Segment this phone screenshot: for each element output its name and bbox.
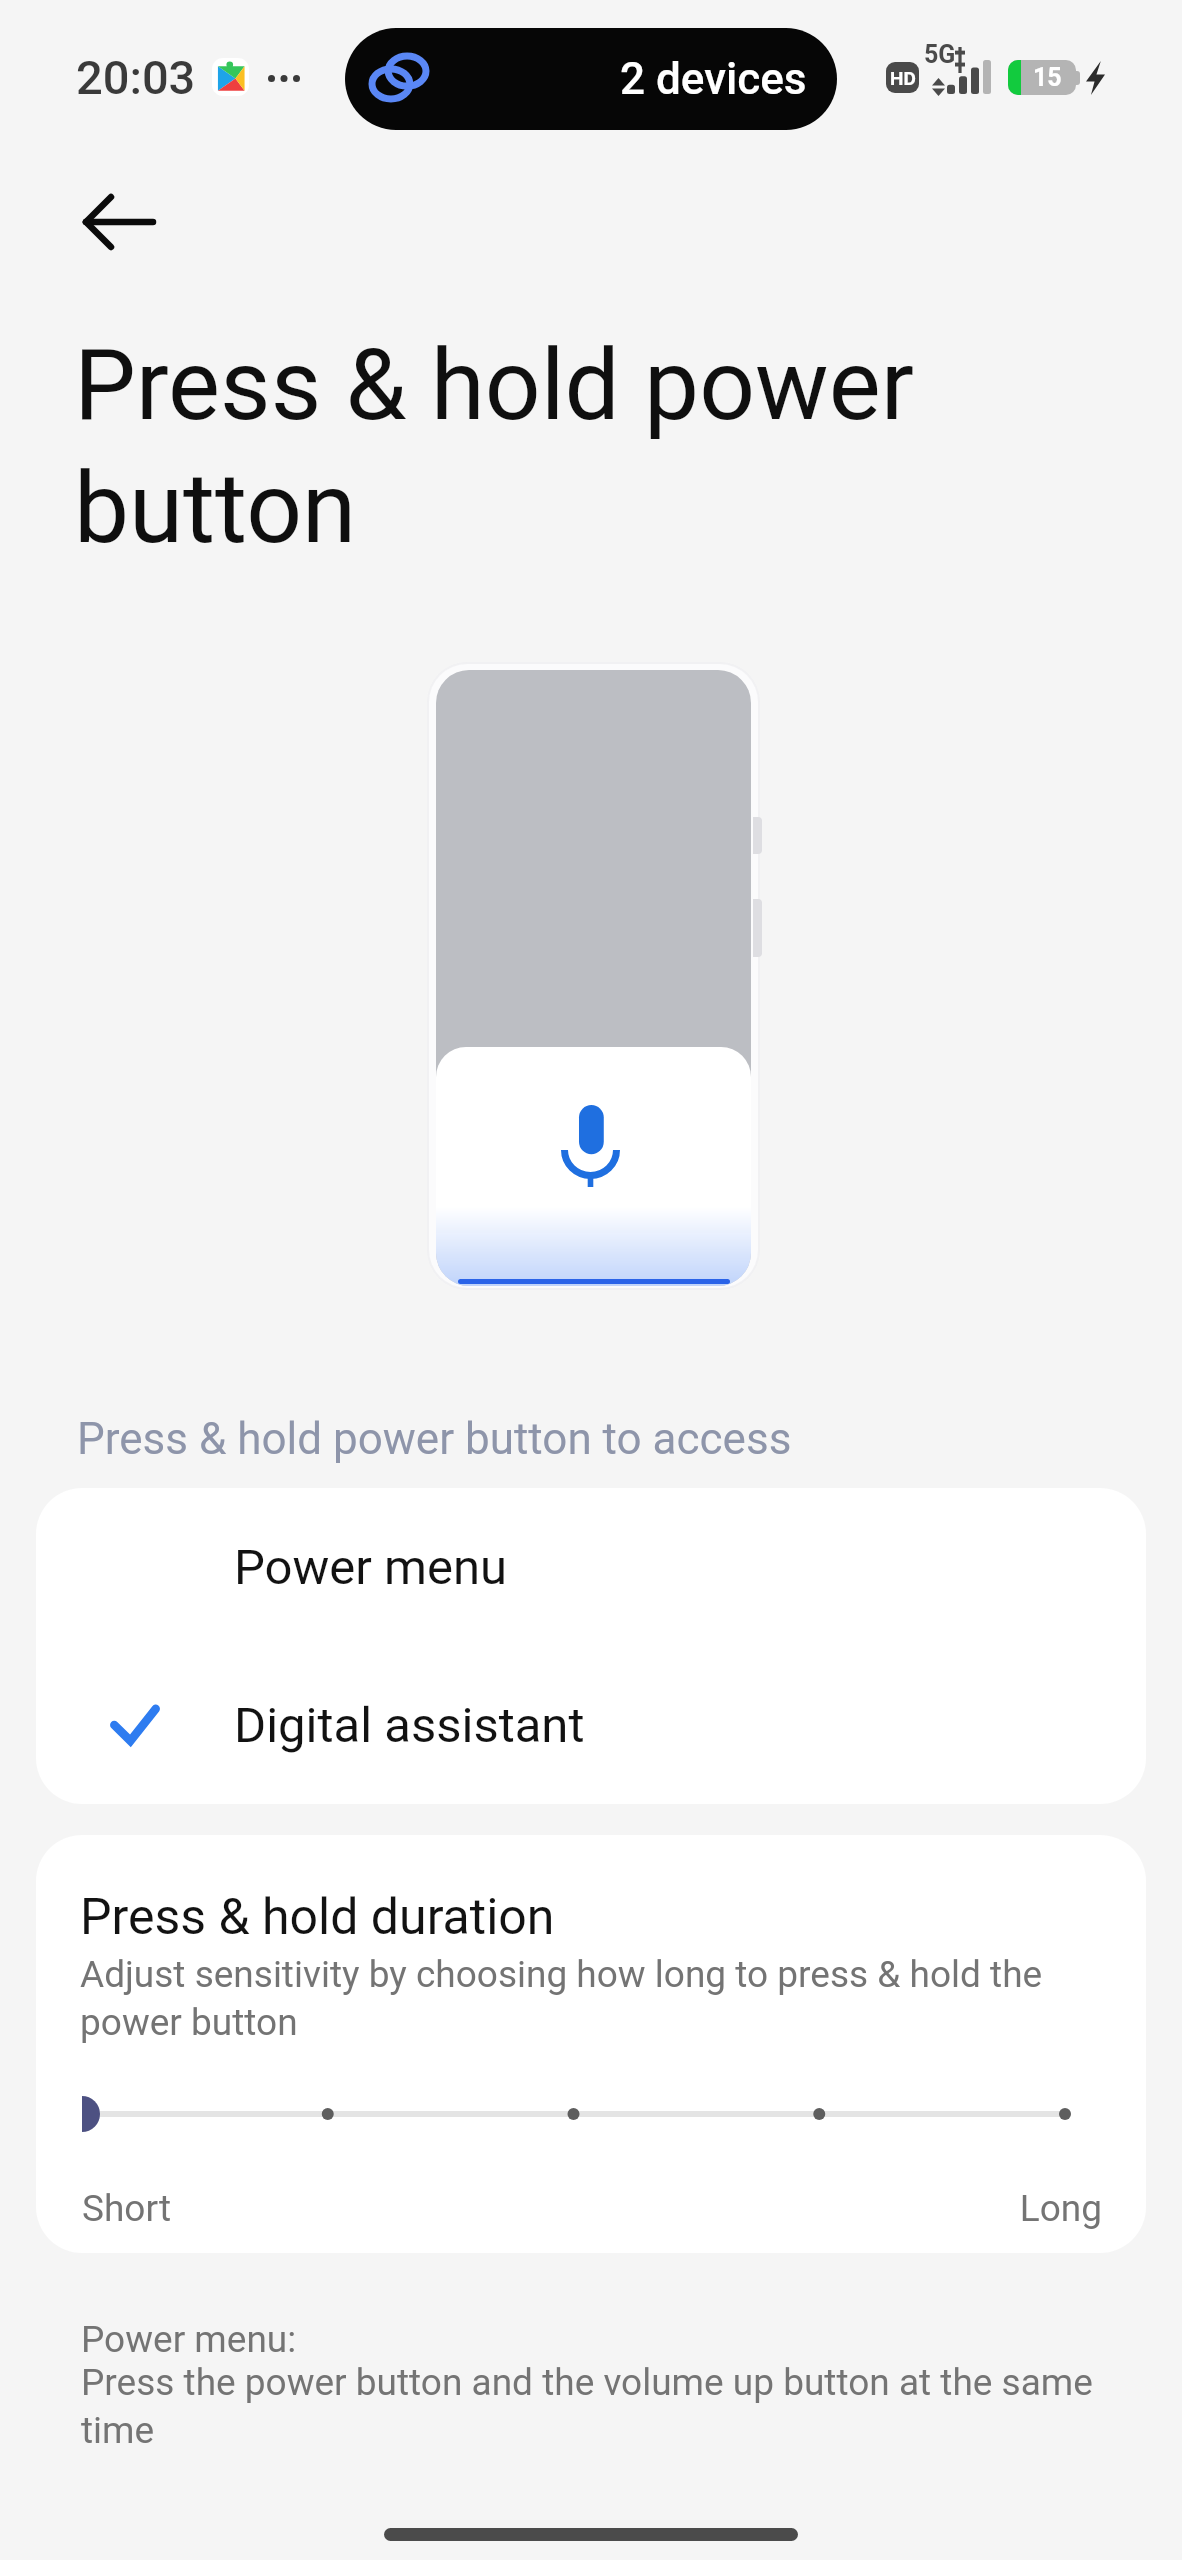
staticText: Press & hold duration <box>80 1888 555 1947</box>
staticText: Power menu: <box>81 2318 297 2361</box>
staticText: Press the power button and the volume up… <box>81 2361 1101 2452</box>
staticText: Digital assistant <box>234 1697 585 1754</box>
button[interactable]: Power menu <box>36 1488 1146 1646</box>
button[interactable]: Back <box>68 172 168 272</box>
button[interactable]: 2 devices connected <box>345 28 837 130</box>
staticText: Press & hold power button <box>74 328 974 566</box>
staticText: Adjust sensitivity by choosing how long … <box>80 1953 1060 2044</box>
staticText: HD <box>890 67 916 89</box>
staticText: Short <box>82 2187 171 2230</box>
staticText: Long <box>920 2187 1102 2230</box>
button[interactable]: Digital assistant <box>36 1646 1146 1804</box>
staticText: 2 devices <box>620 53 807 105</box>
staticText: 5G <box>924 40 956 69</box>
staticText: Power menu <box>234 1539 508 1596</box>
staticText: 20:03 <box>76 50 196 105</box>
staticText: 15 <box>1033 63 1062 92</box>
staticText: Press & hold power button to access <box>77 1413 792 1465</box>
